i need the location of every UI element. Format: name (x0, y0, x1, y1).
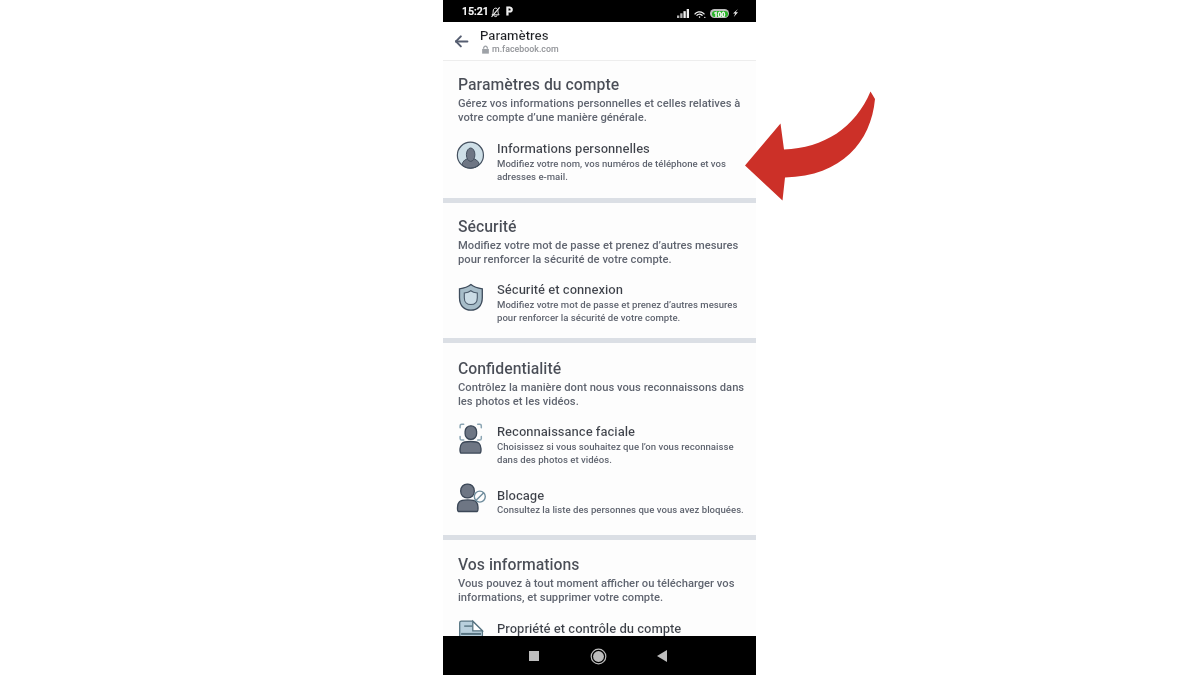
staticText: Vos informations (458, 555, 580, 574)
staticText: 100 (714, 11, 726, 17)
button[interactable]: Blocage (443, 480, 756, 522)
staticText: 15:21 (462, 5, 489, 17)
staticText: P (506, 5, 513, 17)
staticText: Sécurité et connexion (497, 282, 623, 297)
button[interactable]: Back (651, 645, 673, 667)
staticText: Paramètres du compte (458, 75, 620, 94)
staticText: Confidentialité (458, 359, 562, 378)
button[interactable]: Home (587, 645, 609, 667)
button[interactable]: Reconnaissance faciale (443, 420, 756, 468)
staticText: Gérez vos informations personnelles et c… (458, 97, 741, 124)
staticText: Reconnaissance faciale (497, 424, 635, 439)
button[interactable]: Back (449, 29, 473, 53)
staticText: Consultez la liste des personnes que vou… (497, 504, 744, 515)
staticText: Modifiez votre mot de passe et prenez d’… (458, 239, 739, 266)
button[interactable]: Paramètres (476, 22, 676, 60)
button[interactable]: Recents (523, 645, 545, 667)
staticText: Blocage (497, 488, 545, 503)
button[interactable]: Propriété et contrôle du compte (443, 614, 756, 650)
staticText: Contrôlez la manière dont nous vous reco… (458, 381, 745, 408)
staticText: Choisissez si vous souhaitez que l’on vo… (497, 441, 734, 465)
staticText: Paramètres (480, 28, 549, 43)
staticText: m.facebook.com (492, 44, 559, 54)
staticText: Modifiez votre nom, vos numéros de télép… (497, 158, 726, 182)
button[interactable]: Sécurité et connexion (443, 277, 756, 323)
staticText: Informations personnelles (497, 141, 650, 156)
staticText: Modifiez votre mot de passe et prenez d’… (497, 299, 738, 323)
staticText: Propriété et contrôle du compte (497, 621, 682, 636)
staticText: Vous pouvez à tout moment afficher ou té… (458, 577, 735, 604)
staticText: Sécurité (458, 217, 517, 236)
button[interactable]: Informations personnelles (443, 137, 756, 183)
